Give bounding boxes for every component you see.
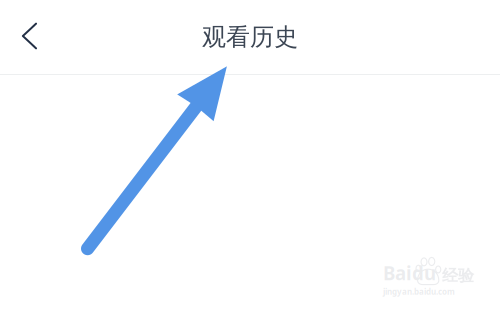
button[interactable]: Back	[7, 15, 51, 59]
staticText: 观看历史	[202, 22, 298, 52]
staticText: 经验	[442, 266, 474, 285]
staticText: jingyan.baidu.com	[383, 286, 455, 297]
staticText: Baidu	[383, 261, 436, 285]
